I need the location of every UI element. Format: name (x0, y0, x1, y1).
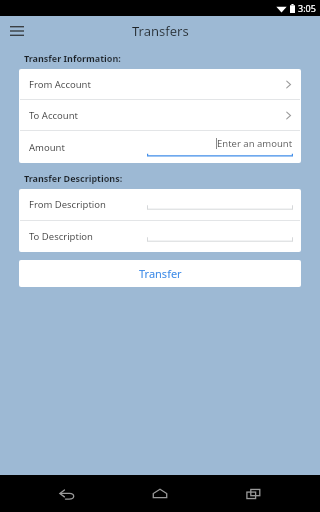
button[interactable]: Recent apps (227, 475, 279, 512)
button[interactable]: From Description (19, 189, 301, 220)
staticText: From Description (29, 198, 106, 211)
button[interactable]: To Description (19, 221, 301, 252)
staticText: To Account (29, 109, 286, 122)
button[interactable]: Transfer (19, 260, 301, 287)
button[interactable]: Amount (19, 131, 301, 163)
staticText: Amount (29, 141, 65, 154)
button[interactable]: Open navigation menu (5, 19, 29, 43)
staticText: 3:05 (298, 2, 316, 14)
staticText: Transfer (139, 266, 182, 281)
staticText: From Account (29, 78, 286, 91)
staticText: Enter an amount (217, 137, 293, 150)
staticText: Transfer Descriptions: (24, 172, 123, 184)
button[interactable]: Back (41, 475, 93, 512)
staticText: Transfer Information: (24, 52, 121, 64)
staticText: To Description (29, 230, 93, 243)
staticText: Transfers (132, 22, 189, 40)
button[interactable]: Home (134, 475, 186, 512)
button[interactable]: To Account (19, 100, 301, 130)
button[interactable]: From Account (19, 69, 301, 99)
